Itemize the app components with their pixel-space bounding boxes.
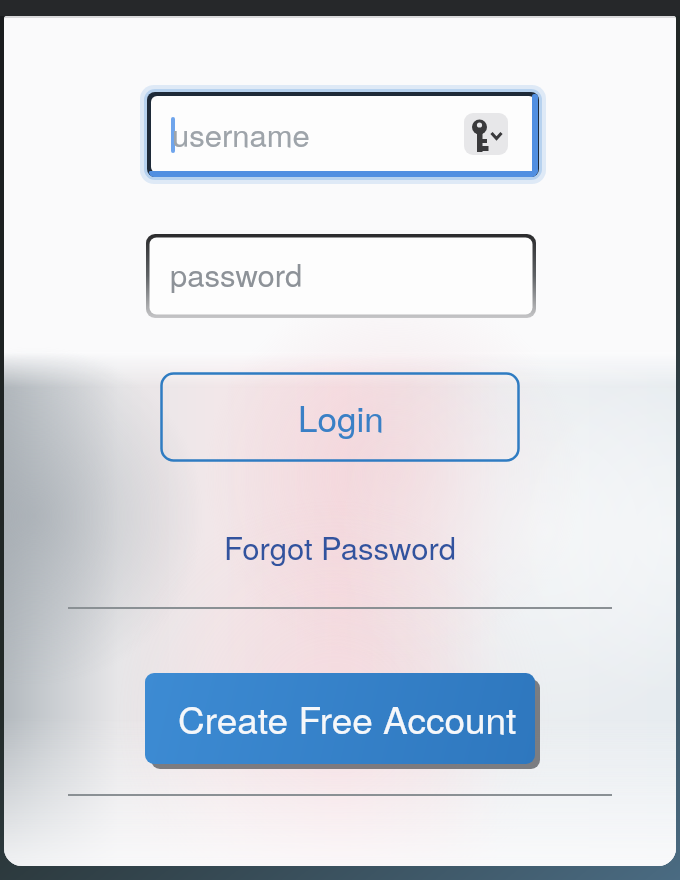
button[interactable]: Login bbox=[160, 372, 520, 462]
staticText: username bbox=[172, 111, 310, 155]
staticText: password bbox=[170, 251, 303, 295]
button[interactable]: Forgot Password bbox=[210, 524, 470, 566]
staticText: Forgot Password bbox=[224, 524, 456, 566]
button[interactable]: username bbox=[147, 92, 539, 177]
staticText: Login bbox=[298, 392, 384, 442]
button[interactable]: Create Free Account bbox=[145, 673, 535, 764]
button[interactable] bbox=[464, 113, 508, 155]
staticText: Create Free Account bbox=[178, 692, 517, 745]
button[interactable]: password bbox=[146, 234, 536, 318]
